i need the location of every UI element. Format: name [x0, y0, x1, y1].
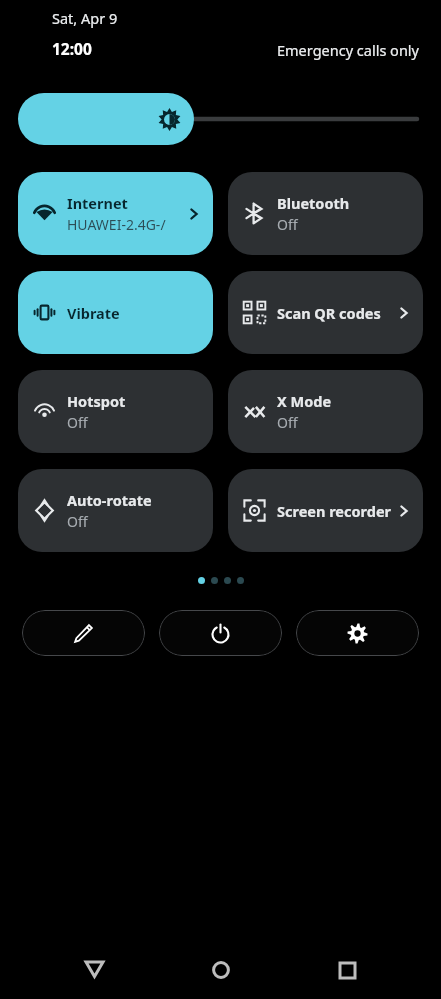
button[interactable]: X Mode [228, 370, 423, 453]
staticText: Off [277, 215, 298, 234]
staticText: Emergency calls only [277, 40, 419, 60]
button[interactable]: Bluetooth [228, 172, 423, 255]
button[interactable]: Recents [323, 946, 371, 994]
staticText: X Mode [277, 391, 332, 411]
button[interactable]: Settings [296, 610, 419, 656]
staticText: Hotspot [67, 391, 126, 411]
button[interactable]: Home [197, 946, 245, 994]
staticText: Off [277, 413, 298, 432]
staticText: Bluetooth [277, 193, 350, 213]
staticText: Sat, Apr 9 [52, 8, 118, 28]
staticText: Off [67, 413, 88, 432]
button[interactable]: Edit [22, 610, 145, 656]
button[interactable]: Brightness [18, 93, 423, 145]
staticText: Scan QR codes [277, 303, 381, 323]
staticText: Screen recorder [277, 501, 392, 521]
button[interactable]: Internet [18, 172, 213, 255]
staticText: Vibrate [67, 303, 120, 323]
staticText: Off [67, 512, 88, 531]
staticText: 12:00 [52, 38, 92, 59]
button[interactable]: Vibrate [18, 271, 213, 354]
button[interactable]: Power [159, 610, 282, 656]
staticText: Auto-rotate [67, 490, 152, 510]
staticText: HUAWEI-2.4G-/ [67, 215, 166, 234]
button[interactable]: Back [70, 946, 118, 994]
staticText: Internet [67, 193, 128, 213]
button[interactable]: Hotspot [18, 370, 213, 453]
button[interactable]: Auto-rotate [18, 469, 213, 552]
button[interactable]: Scan QR codes [228, 271, 423, 354]
button[interactable]: Screen recorder [228, 469, 423, 552]
